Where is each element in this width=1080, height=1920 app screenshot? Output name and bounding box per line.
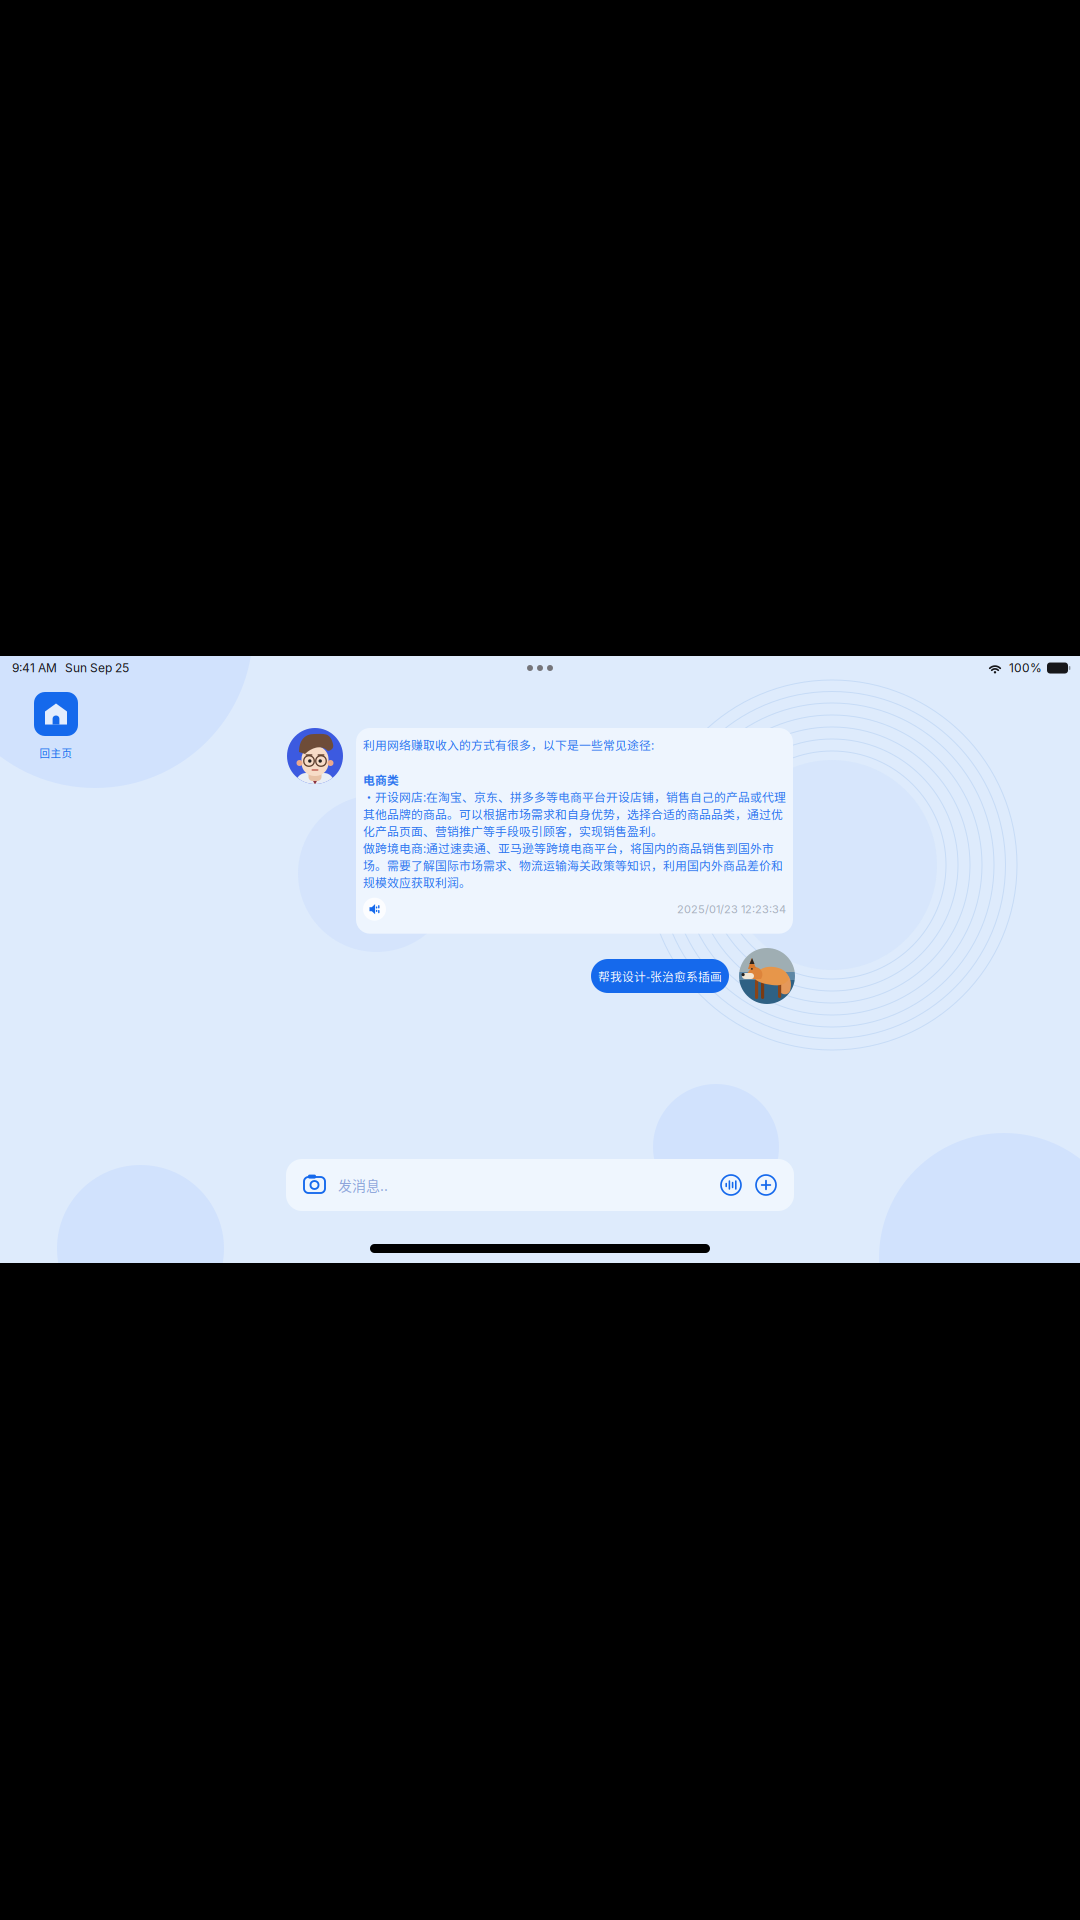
staticText: 电商类 xyxy=(363,771,399,788)
staticText: 帮我设计-张治愈系插画 xyxy=(598,967,722,985)
staticText: ·开设网店:在淘宝、京东、拼多多等电商平台开设店铺，销售自己的产品或代理其他品牌… xyxy=(363,788,786,839)
staticText: 2025/01/23 12:23:34 xyxy=(677,902,786,916)
staticText: 做跨境电商:通过速卖通、亚马逊等跨境电商平台，将国内的商品销售到国外市场。需要了… xyxy=(363,839,783,891)
staticText: 利用网络赚取收入的方式有很多，以下是一些常见途径: xyxy=(363,736,654,753)
staticText: Sun Sep 25 xyxy=(65,661,129,675)
button[interactable]: 回主页 xyxy=(34,692,78,760)
button[interactable]: More options xyxy=(756,1175,776,1195)
button[interactable]: Voice input xyxy=(721,1175,741,1195)
staticText: 100% xyxy=(1009,661,1042,675)
staticText: 9:41 AM xyxy=(12,661,57,675)
button[interactable]: Send a photo xyxy=(304,1175,325,1194)
button[interactable]: Play message aloud xyxy=(363,898,386,921)
staticText: 发消息.. xyxy=(338,1175,388,1195)
staticText: 回主页 xyxy=(39,745,72,760)
